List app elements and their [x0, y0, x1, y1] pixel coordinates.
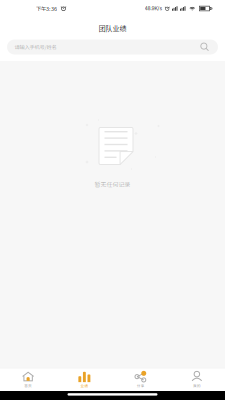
staticText: 下午3:36 [36, 4, 57, 12]
staticText: 48.9K/s [144, 5, 162, 11]
button[interactable]: 分享 [112, 368, 169, 391]
staticText: 首页 [24, 383, 32, 388]
staticText: 分享 [137, 383, 145, 388]
button[interactable]: 搜索 [200, 42, 209, 51]
staticText: 请输入手机号/姓名 [14, 43, 56, 51]
staticText: 暂无任何记录 [94, 180, 130, 189]
staticText: 团队业绩 [98, 23, 126, 33]
button[interactable]: 首页 [0, 368, 56, 391]
button[interactable]: 业绩 [56, 368, 112, 391]
staticText: 业绩 [80, 383, 88, 388]
staticText: 我的 [193, 383, 201, 388]
button[interactable]: 我的 [169, 368, 225, 391]
